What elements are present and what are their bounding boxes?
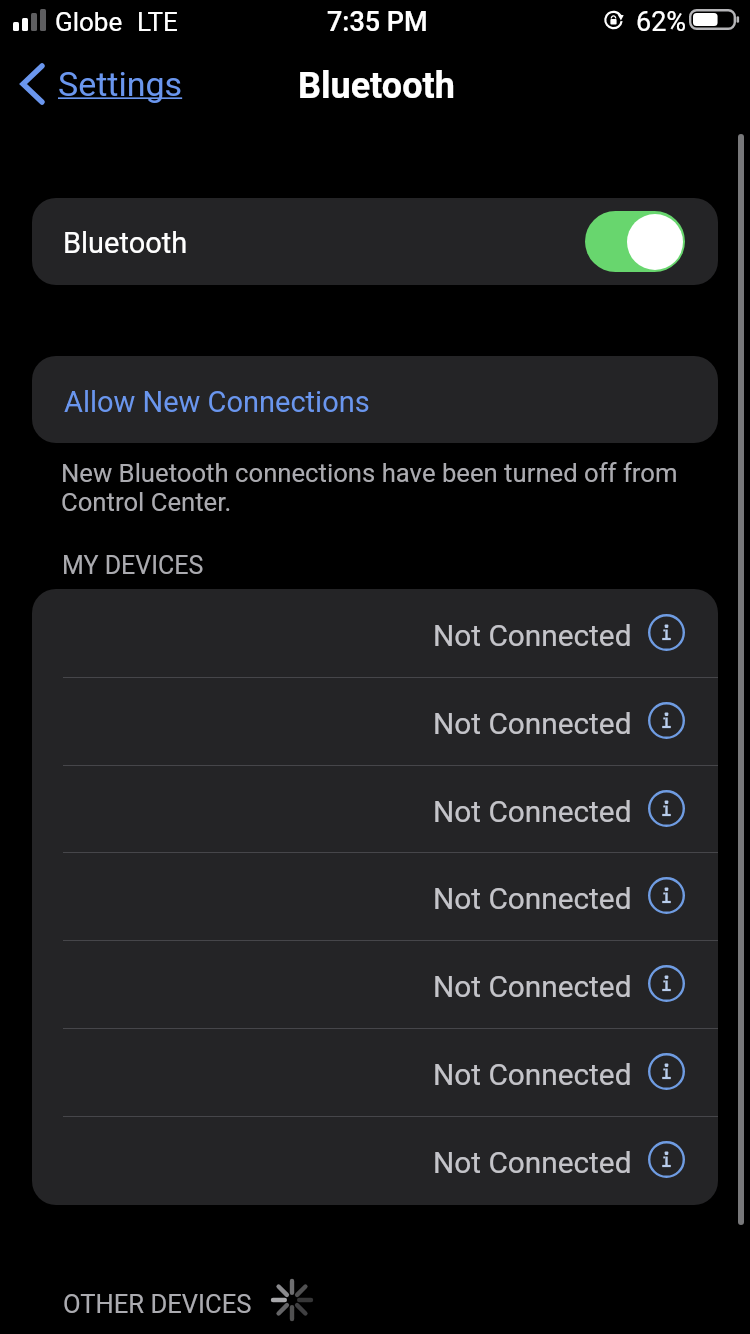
button[interactable]: Device info	[647, 701, 686, 740]
staticText: MY DEVICES	[62, 551, 204, 580]
staticText: Not Connected	[433, 706, 632, 741]
button[interactable]: Not Connected	[32, 1028, 718, 1116]
button[interactable]: Not Connected	[32, 940, 718, 1028]
button[interactable]: Device info	[647, 964, 686, 1003]
staticText: Not Connected	[433, 794, 632, 829]
button[interactable]: Device info	[647, 1140, 686, 1179]
button[interactable]: Bluetooth toggle, on	[585, 211, 685, 272]
button[interactable]: Back to Settings	[20, 62, 183, 106]
staticText: Not Connected	[433, 1057, 632, 1092]
button[interactable]: Not Connected	[32, 589, 718, 677]
staticText: Bluetooth	[63, 226, 188, 260]
staticText: Globe	[55, 7, 123, 37]
button[interactable]: Device info	[647, 1052, 686, 1091]
button[interactable]: Device info	[647, 613, 686, 652]
staticText: Not Connected	[433, 1145, 632, 1180]
staticText: Not Connected	[433, 618, 632, 653]
staticText: Not Connected	[433, 969, 632, 1004]
staticText: OTHER DEVICES	[63, 1289, 252, 1319]
staticText: Bluetooth	[298, 65, 455, 107]
button[interactable]: Not Connected	[32, 677, 718, 765]
button[interactable]: Not Connected	[32, 1116, 718, 1204]
button[interactable]: Not Connected	[32, 852, 718, 940]
staticText: Not Connected	[433, 881, 632, 916]
staticText: 62%	[636, 6, 687, 38]
staticText: Settings	[58, 64, 183, 104]
staticText: 7:35 PM	[327, 6, 428, 38]
button[interactable]: Device info	[647, 876, 686, 915]
button[interactable]: Device info	[647, 789, 686, 828]
staticText: LTE	[137, 7, 178, 37]
button[interactable]: Not Connected	[32, 765, 718, 853]
staticText: Allow New Connections	[64, 385, 370, 419]
button[interactable]: Allow New Connections	[32, 356, 718, 443]
staticText: New Bluetooth connections have been turn…	[61, 458, 701, 517]
button[interactable]: Bluetooth	[32, 198, 718, 285]
